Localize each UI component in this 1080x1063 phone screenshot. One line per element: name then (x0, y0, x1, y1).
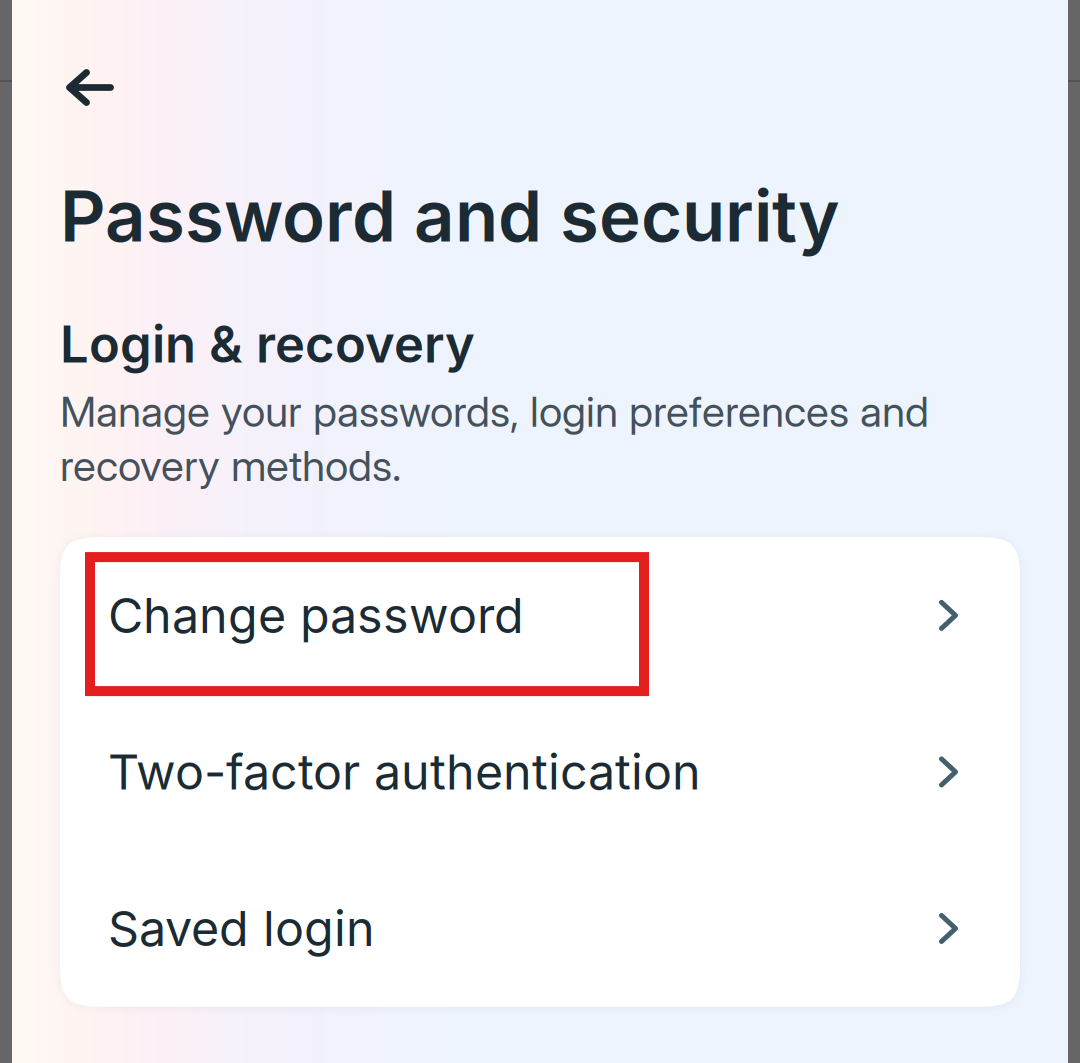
button[interactable]: Saved login (60, 850, 1020, 1007)
button[interactable]: Two-factor authentication (60, 694, 1020, 850)
staticText: Change password (108, 586, 524, 645)
staticText: Login & recovery (60, 313, 475, 375)
staticText: Two-factor authentication (108, 743, 701, 801)
staticText: Manage your passwords, login preferences… (60, 386, 929, 491)
button[interactable]: Back (12, 0, 154, 126)
button[interactable]: Change password (60, 537, 1020, 694)
staticText: Saved login (108, 899, 375, 958)
staticText: Password and security (60, 173, 840, 258)
